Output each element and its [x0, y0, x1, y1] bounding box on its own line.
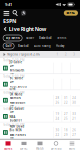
button[interactable]: ESPN+ [64, 10, 78, 16]
staticText: New Boston LIFF [10, 101, 26, 108]
staticText: BC Gabat LIFF [10, 107, 24, 114]
staticText: 28 [55, 96, 59, 100]
staticText: JD Gable LIFF [10, 60, 23, 67]
button[interactable]: Menu [2, 9, 11, 17]
staticText: EMB Parties LIFF [10, 133, 26, 140]
staticText: Basketball [39, 36, 52, 40]
staticText: Baseball [18, 44, 29, 48]
button[interactable]: Top Events [3, 35, 22, 41]
staticText: Nigeria / Lagos 4-2-06 [7, 53, 40, 56]
button[interactable]: Today, 7:30 PM [0, 58, 80, 74]
staticText: 29 [64, 133, 68, 137]
staticText: 22 [55, 133, 59, 137]
staticText: Live Right Now [9, 25, 47, 33]
button[interactable]: Scores [0, 139, 16, 152]
button[interactable]: Golf [3, 43, 14, 49]
staticText: NEW David Bio WIN [10, 125, 25, 132]
staticText: 21 [72, 117, 76, 120]
staticText: 26 [55, 101, 59, 104]
staticText: Today, 7:30 PM [3, 58, 24, 62]
button[interactable]: Search [11, 9, 19, 17]
staticText: ESPN [3, 17, 16, 25]
staticText: Regt Streets WIN [10, 85, 27, 92]
button[interactable]: Watch [32, 139, 48, 152]
staticText: 33 [72, 112, 76, 116]
staticText: Top Events [6, 36, 20, 40]
staticText: Today, 8:30 PM [3, 91, 24, 94]
staticText: 26 [72, 128, 76, 132]
staticText: ESPN+ [66, 11, 75, 15]
button[interactable]: Auto Racing [33, 43, 52, 49]
staticText: ESPN+ [20, 147, 28, 150]
staticText: More [68, 147, 75, 150]
staticText: Tennis [57, 36, 66, 40]
button[interactable]: Hockey [55, 43, 65, 49]
staticText: Scores [4, 147, 12, 150]
staticText: Soccer [26, 36, 34, 40]
staticText: 30 [55, 128, 59, 132]
button[interactable]: Back [3, 26, 7, 31]
button[interactable]: ESPN+ [16, 139, 32, 152]
button[interactable]: Nigeria / Lagos 4-2-06 [3, 53, 40, 56]
staticText: 3 [73, 53, 75, 56]
staticText: 2 [65, 53, 67, 56]
staticText: Hockey [56, 44, 64, 48]
button[interactable]: Basketball [38, 35, 53, 41]
staticText: 1 [56, 53, 58, 56]
button[interactable]: ESPN BET [48, 139, 64, 152]
button[interactable]: Today, 9:30 PM [0, 122, 80, 138]
button[interactable]: Today, 8:00 PM [0, 74, 80, 90]
button[interactable]: Tennis [56, 35, 67, 41]
staticText: 18 [64, 128, 68, 132]
button[interactable]: Today, 8:30 PM [0, 90, 80, 106]
staticText: 31 [64, 96, 68, 100]
staticText: Today, 9:30 PM [3, 123, 24, 126]
staticText: OK World Warriors [10, 93, 23, 100]
staticText: 19 [55, 112, 59, 116]
staticText: 22 [64, 101, 68, 104]
button[interactable]: Soccer [25, 35, 35, 41]
staticText: 25 [64, 117, 68, 120]
staticText: Whitworth LIFF [10, 69, 25, 76]
staticText: Auto Racing [34, 44, 51, 48]
staticText: NBA Bucks101 LIFF [10, 115, 23, 126]
staticText: Golf [6, 44, 12, 48]
staticText: 27 [64, 112, 68, 116]
staticText: Watch [36, 147, 44, 150]
staticText: ESPN BET [50, 147, 61, 150]
staticText: BC Scottie LIFF [10, 76, 24, 84]
staticText: 9:41 [5, 2, 12, 7]
button[interactable]: Baseball [17, 43, 30, 49]
staticText: Today, 9:00 PM [3, 107, 24, 110]
staticText: 24 [55, 117, 59, 120]
button[interactable]: Profile [19, 10, 28, 16]
button[interactable]: More [64, 139, 80, 152]
staticText: 24 [72, 96, 76, 100]
staticText: 30 [72, 101, 76, 104]
staticText: 27 [72, 133, 76, 137]
staticText: Today, 8:00 PM [3, 75, 24, 78]
button[interactable]: Today, 9:00 PM [0, 106, 80, 122]
